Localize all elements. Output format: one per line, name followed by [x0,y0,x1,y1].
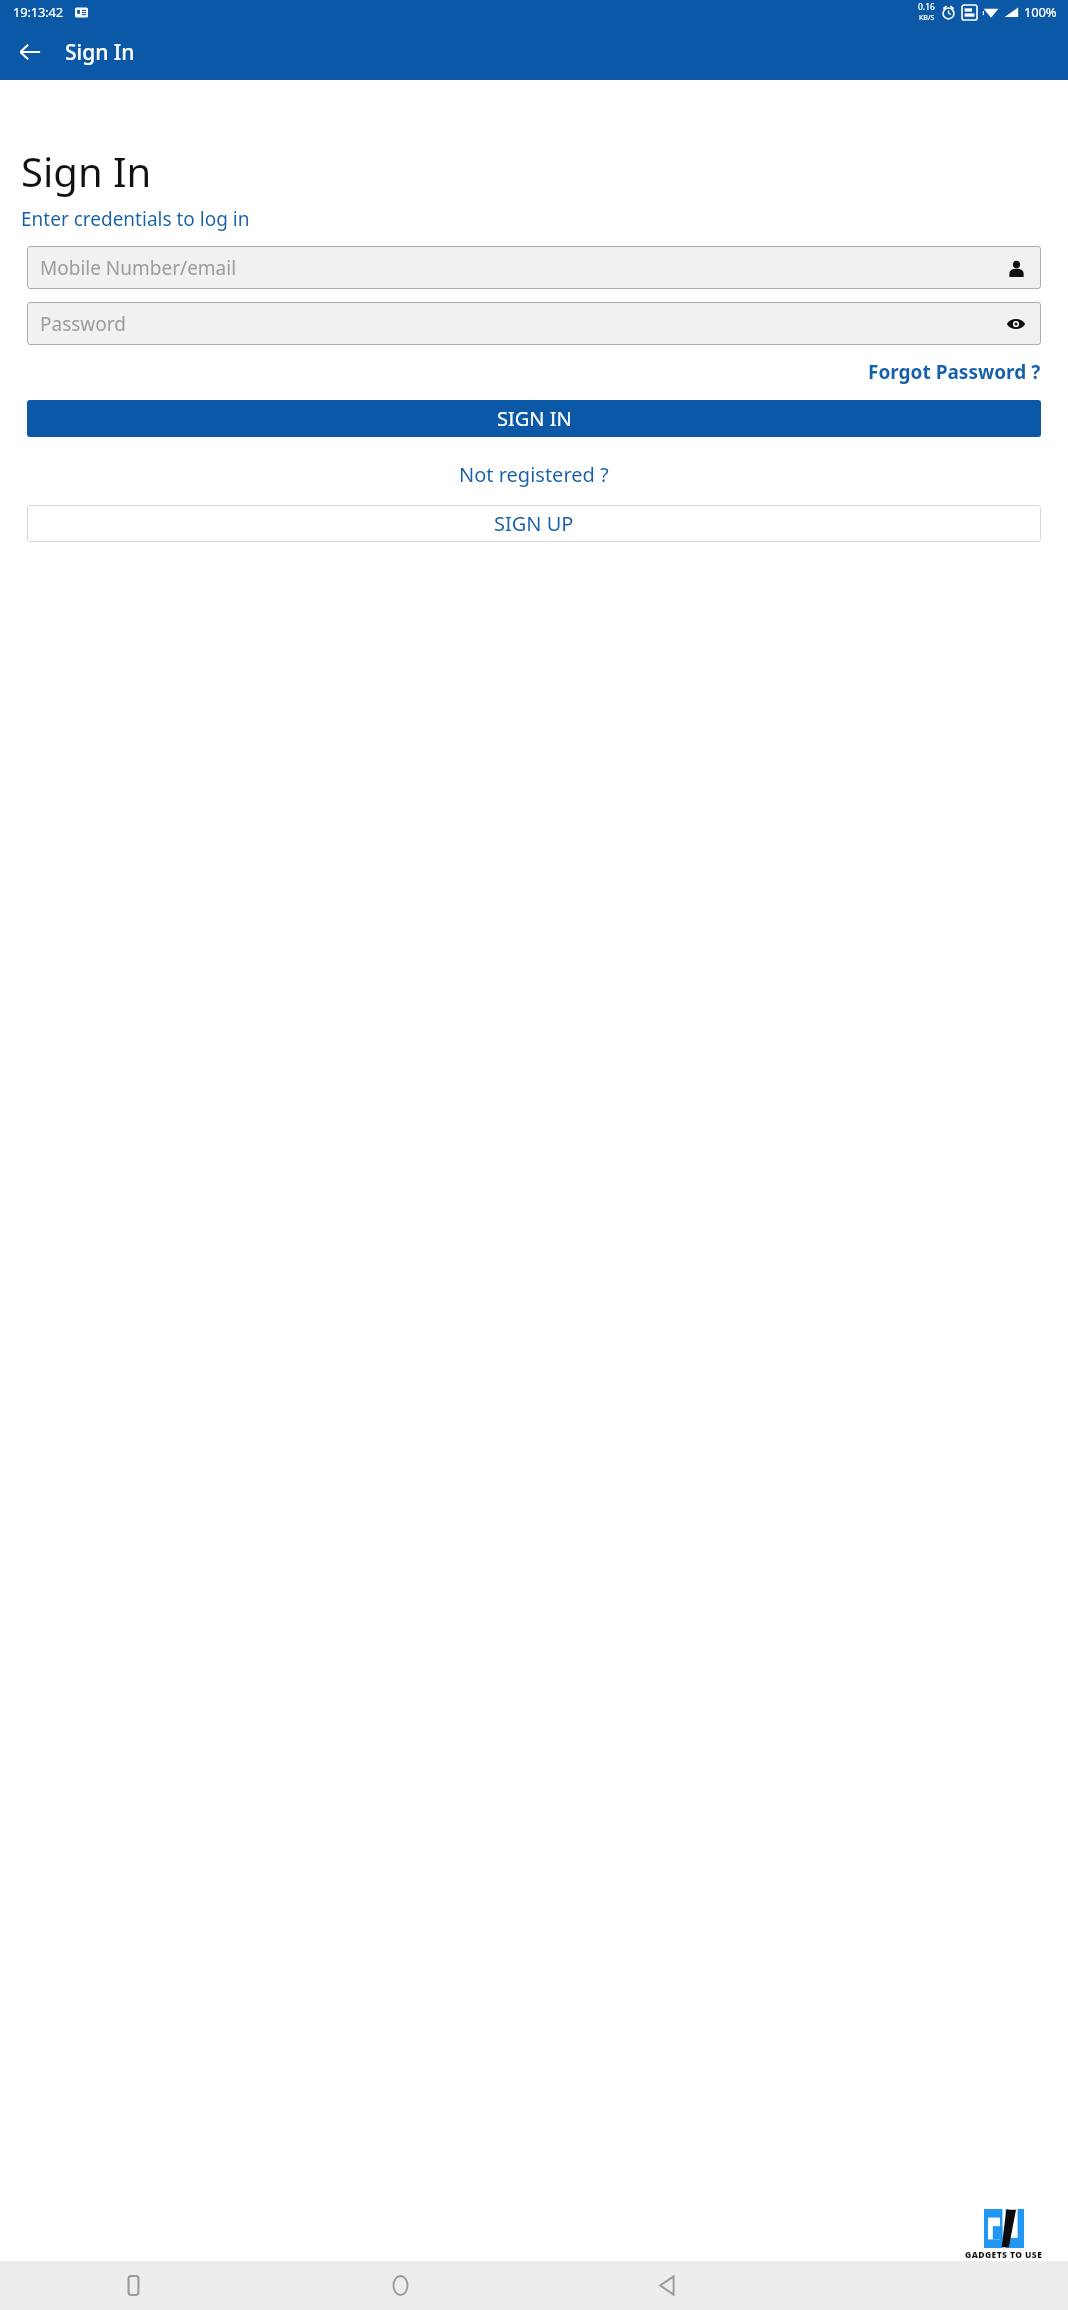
staticText: Mobile Number/email [40,255,1004,281]
button[interactable]: SIGN UP [27,505,1041,542]
staticText: Enter credentials to log in [21,206,250,232]
button[interactable]: Home [267,2261,534,2310]
staticText: GADGETS TO USE [965,2249,1043,2261]
staticText: KB/S [919,13,935,23]
staticText: 0.16 [918,1,935,13]
staticText: 100% [1024,3,1057,21]
button[interactable]: Mobile Number/email [27,246,1041,289]
staticText: Sign In [65,38,135,67]
staticText: Not registered ? [459,461,609,488]
button[interactable]: Not registered ? [459,461,609,488]
other: Show password [1004,312,1028,336]
button[interactable]: Back [6,28,54,76]
staticText: SIGN IN [497,405,572,432]
staticText: Password [40,311,1004,337]
button[interactable]: Recent apps [0,2261,267,2310]
staticText: 19:13:42 [13,3,63,21]
other: Account [1004,256,1028,280]
button[interactable]: Back [534,2261,801,2310]
button[interactable]: SIGN IN [27,400,1041,437]
staticText: SIGN UP [494,510,574,537]
staticText: Forgot Password ? [868,359,1041,385]
button[interactable]: Password [27,302,1041,345]
staticText: Sign In [21,144,152,198]
button[interactable]: Forgot Password ? [868,359,1041,385]
